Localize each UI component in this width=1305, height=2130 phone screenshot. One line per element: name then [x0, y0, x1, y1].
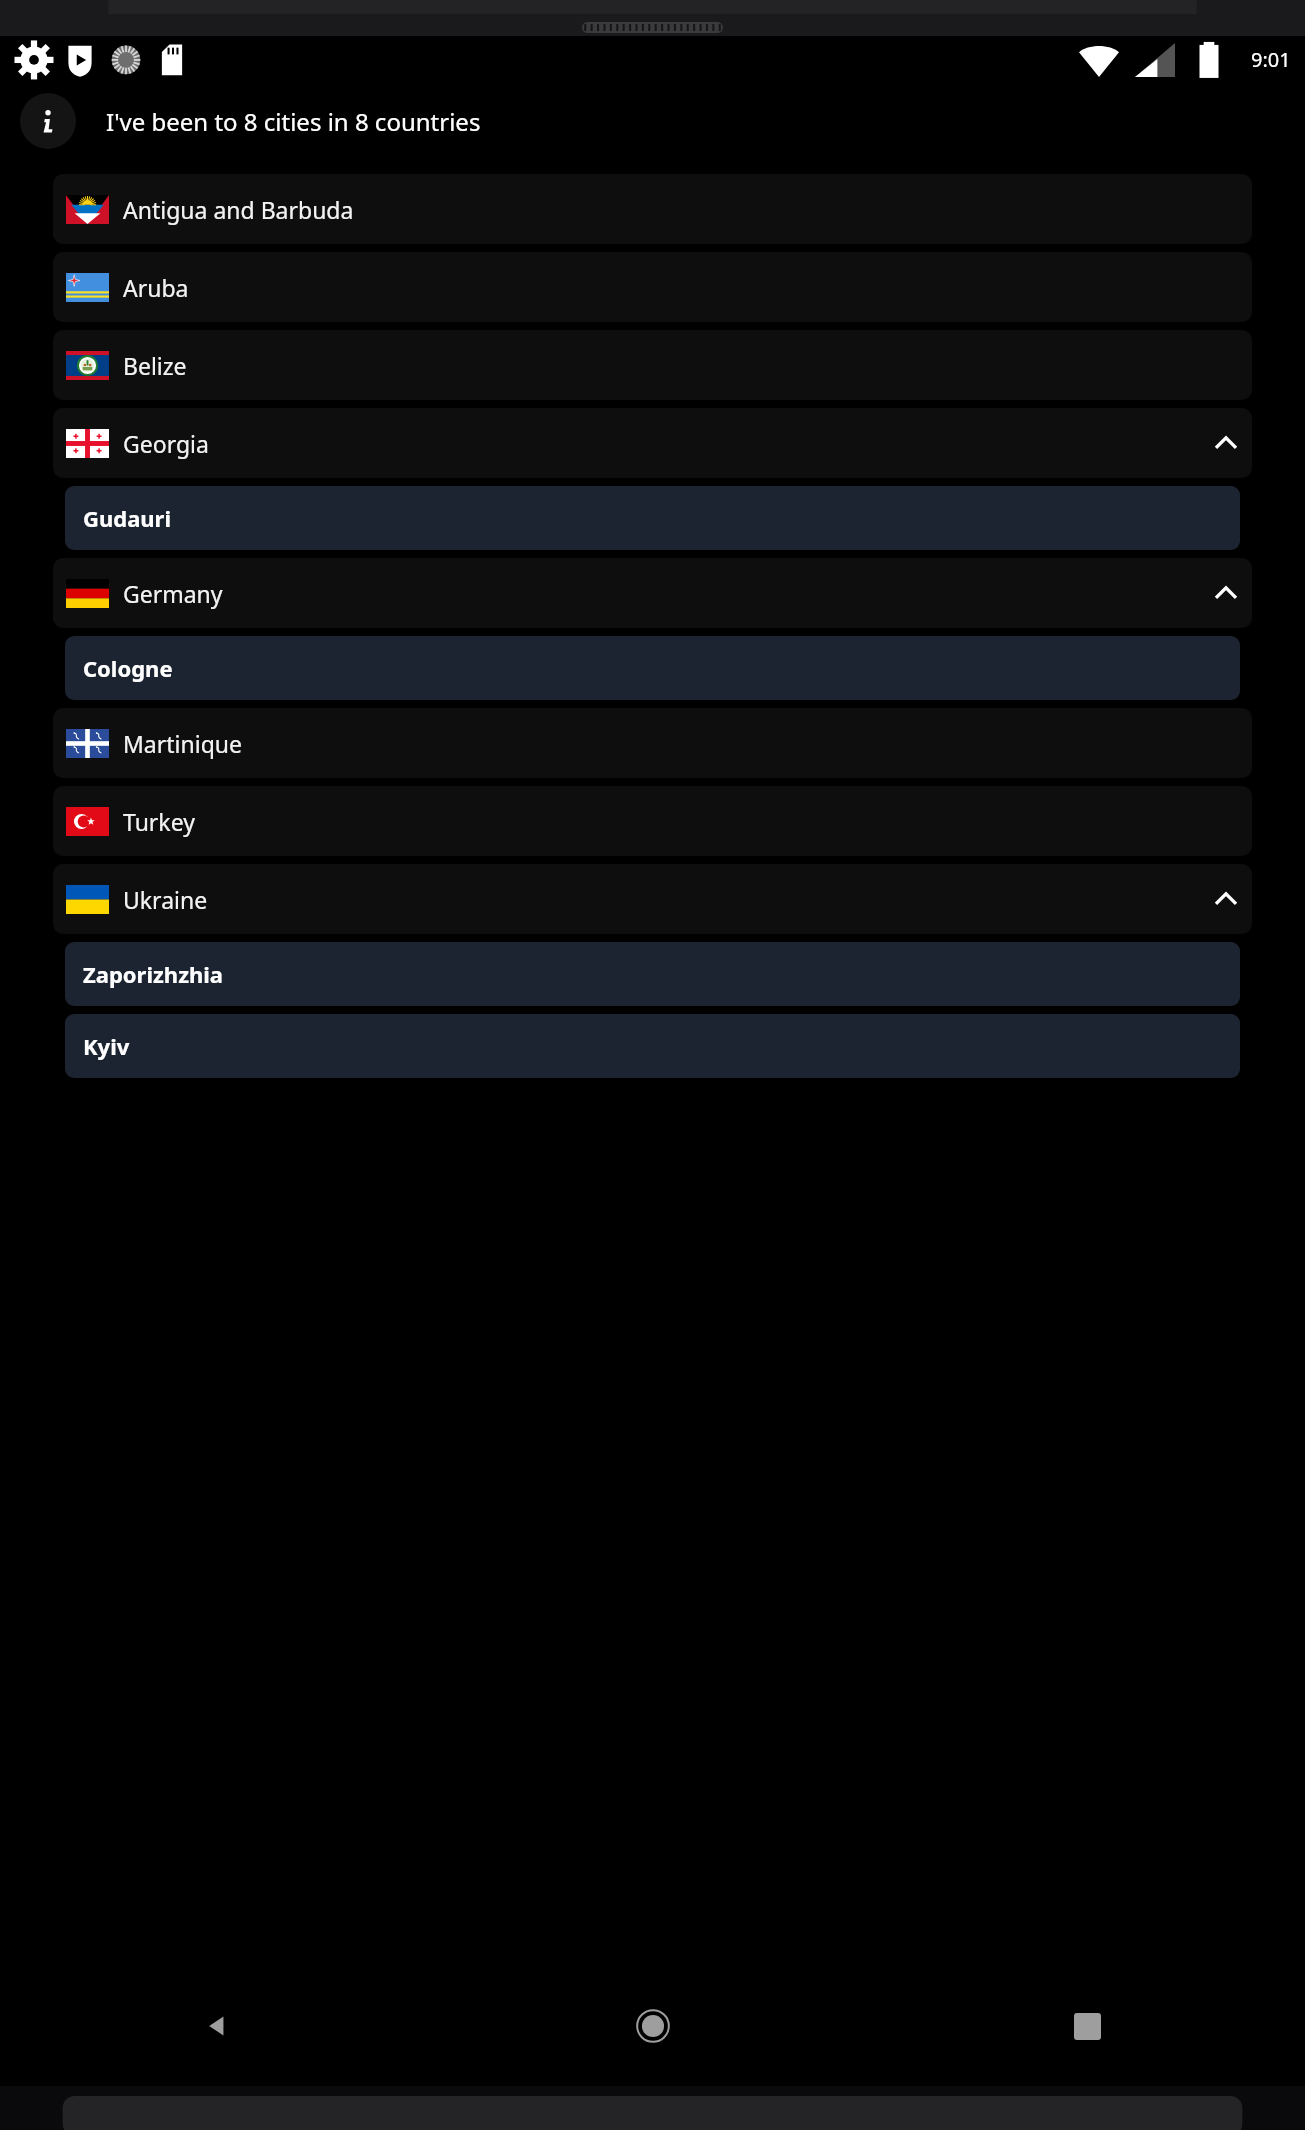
staticText: 9:01 — [1251, 46, 1291, 73]
staticText: Belize — [123, 350, 187, 381]
staticText: Zaporizhzhia — [83, 959, 224, 989]
button[interactable]: Germany — [53, 558, 1252, 628]
button[interactable]: Turkey — [53, 786, 1252, 856]
staticText: Martinique — [123, 728, 242, 759]
staticText: Antigua and Barbuda — [123, 194, 354, 225]
button[interactable]: Kyiv — [65, 1014, 1240, 1078]
button[interactable]: Cologne — [65, 636, 1240, 700]
button[interactable]: Belize — [53, 330, 1252, 400]
button[interactable]: Antigua and Barbuda — [53, 174, 1252, 244]
button[interactable]: Info — [20, 93, 76, 149]
staticText: Gudauri — [83, 503, 172, 533]
button[interactable]: Home — [435, 1966, 870, 2086]
button[interactable]: Zaporizhzhia — [65, 942, 1240, 1006]
button[interactable]: Ukraine — [53, 864, 1252, 934]
staticText: Georgia — [123, 428, 209, 459]
staticText: Kyiv — [83, 1031, 130, 1061]
staticText: Germany — [123, 578, 223, 609]
staticText: Turkey — [123, 806, 195, 837]
button[interactable]: Gudauri — [65, 486, 1240, 550]
button[interactable]: Recent apps — [870, 1966, 1305, 2086]
staticText: Cologne — [83, 653, 173, 683]
staticText: I've been to 8 cities in 8 countries — [106, 105, 481, 138]
button[interactable]: Back — [0, 1966, 435, 2086]
staticText: Aruba — [123, 272, 189, 303]
staticText: Ukraine — [123, 884, 208, 915]
button[interactable]: Georgia — [53, 408, 1252, 478]
button[interactable]: Martinique — [53, 708, 1252, 778]
button[interactable]: Aruba — [53, 252, 1252, 322]
